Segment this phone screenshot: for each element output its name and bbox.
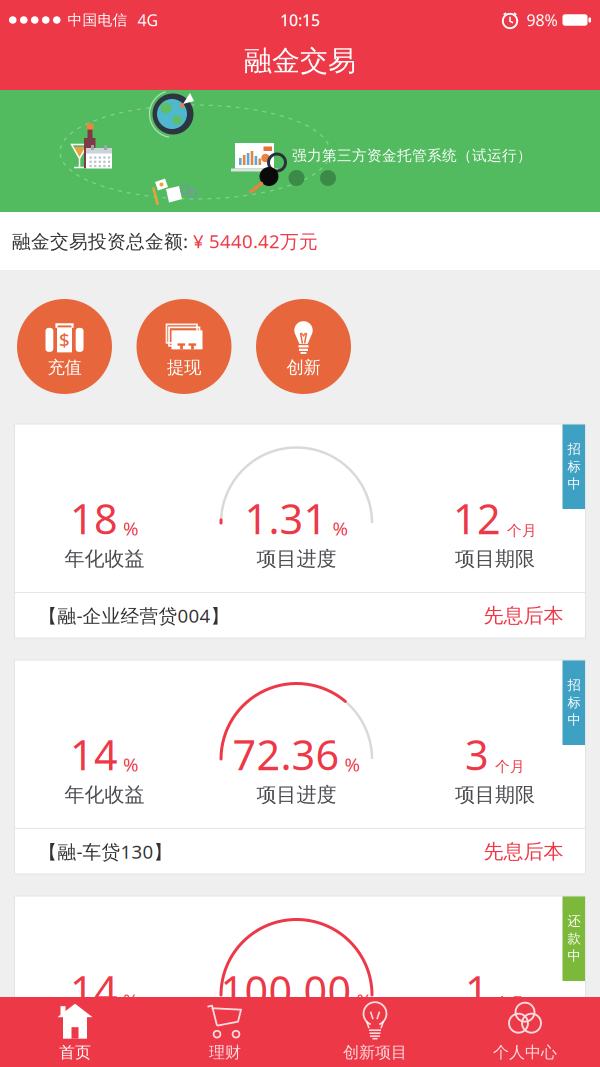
button[interactable]: 创新项目 — [300, 997, 450, 1067]
staticText: 中 — [567, 712, 580, 728]
staticText: 14 — [70, 727, 118, 782]
staticText: 个月 — [507, 522, 537, 540]
staticText: 先息后本 — [483, 603, 563, 628]
button[interactable]: 18 — [14, 424, 585, 638]
staticText: 还 — [567, 913, 580, 929]
staticText: 先息后本 — [483, 839, 563, 864]
staticText: 3 — [465, 727, 489, 782]
staticText: % — [344, 752, 360, 777]
staticText: 项目期限 — [455, 783, 535, 807]
button[interactable]: 提现 — [136, 299, 231, 394]
staticText: 年化收益 — [64, 783, 144, 807]
staticText: 标 — [567, 694, 580, 711]
staticText: 14 — [70, 963, 118, 1018]
staticText: 创新项目 — [343, 1043, 407, 1062]
staticText: 项目进度 — [256, 547, 336, 571]
staticText: 1.31 — [244, 491, 327, 546]
button[interactable]: 强力第三方资金托管系统（试运行） — [0, 90, 600, 212]
staticText: 个月 — [495, 758, 525, 776]
staticText: 中 — [567, 476, 580, 492]
button[interactable]: 个人中心 — [450, 997, 600, 1067]
staticText: 1 — [465, 963, 489, 1018]
staticText: 中国电信 — [67, 11, 127, 29]
staticText: 融金交易投资总金额: — [12, 229, 193, 253]
staticText: % — [123, 516, 139, 541]
staticText: 项目期限 — [455, 547, 535, 571]
staticText: 标 — [567, 458, 580, 475]
staticText: 中 — [567, 948, 580, 964]
staticText: 12 — [453, 491, 501, 546]
staticText: 理财 — [209, 1043, 241, 1062]
staticText: 100.00 — [220, 963, 351, 1018]
staticText: 4G — [137, 9, 158, 31]
staticText: 72.36 — [232, 727, 339, 782]
staticText: 强力第三方资金托管系统（试运行） — [292, 146, 532, 164]
button[interactable]: $ — [17, 299, 112, 394]
staticText: 【融-车贷130】 — [38, 839, 172, 864]
staticText: 年化收益 — [64, 547, 144, 571]
staticText: 98% — [526, 9, 557, 31]
staticText: % — [356, 988, 372, 1013]
button[interactable]: 首页 — [0, 997, 150, 1067]
staticText: % — [332, 516, 348, 541]
staticText: % — [123, 988, 139, 1013]
staticText: ¥ 5440.42万元 — [193, 229, 318, 253]
staticText: 10:15 — [280, 9, 320, 31]
staticText: $ — [59, 327, 70, 352]
staticText: 个人中心 — [493, 1043, 557, 1062]
staticText: 项目期限 — [455, 1019, 535, 1043]
staticText: 18 — [70, 491, 118, 546]
staticText: % — [123, 752, 139, 777]
staticText: 创新 — [286, 357, 320, 378]
staticText: 年化收益 — [64, 1019, 144, 1043]
staticText: 首页 — [59, 1043, 91, 1062]
button[interactable]: 创新 — [256, 299, 351, 394]
staticText: 融金交易 — [244, 44, 356, 78]
button[interactable]: 14 — [14, 660, 585, 874]
staticText: 个月 — [495, 994, 525, 1012]
button[interactable]: 理财 — [150, 997, 300, 1067]
staticText: 招 — [567, 677, 580, 693]
button[interactable]: 14 — [14, 896, 585, 1067]
staticText: 提现 — [167, 357, 201, 378]
staticText: 款 — [567, 930, 580, 947]
staticText: 充值 — [47, 357, 81, 378]
staticText: 【融-企业经营贷004】 — [38, 603, 229, 628]
staticText: 招 — [567, 441, 580, 457]
staticText: 项目进度 — [256, 783, 336, 807]
